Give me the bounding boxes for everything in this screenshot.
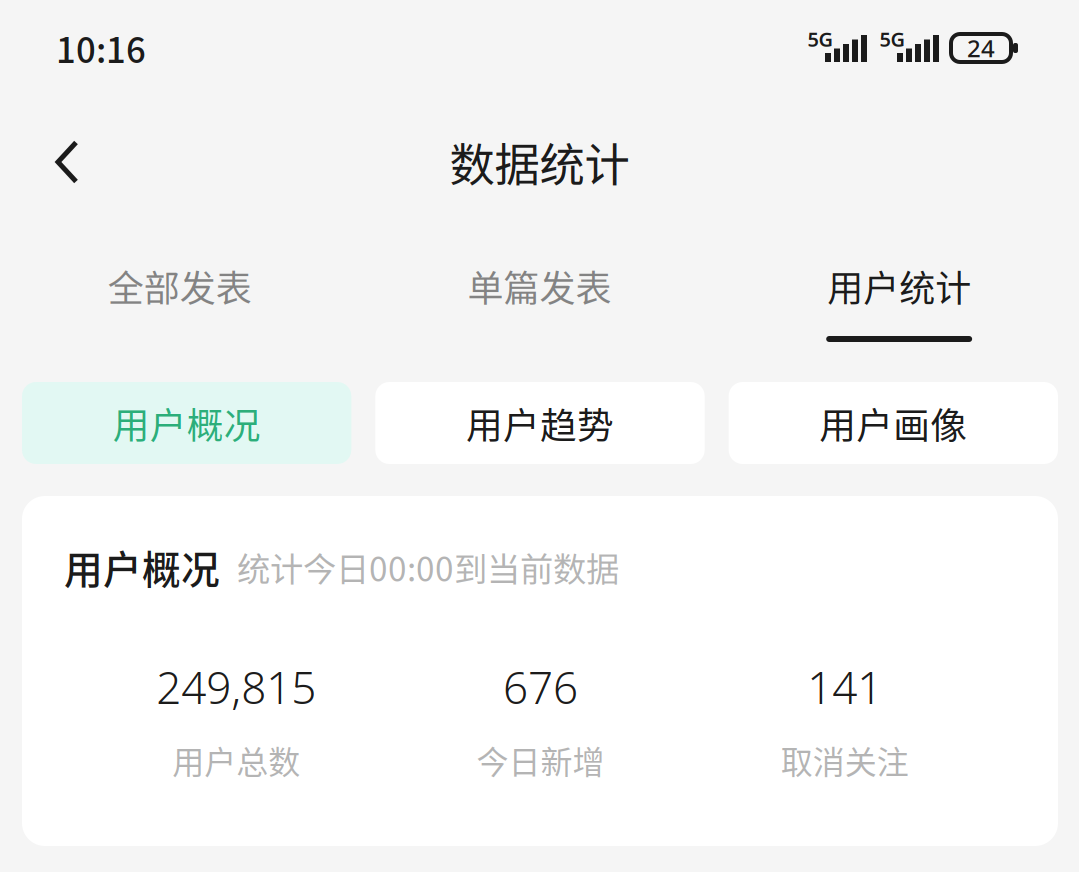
staticText: 249,815	[156, 658, 316, 716]
staticText: 24	[967, 32, 995, 64]
staticText: 用户概况	[64, 539, 220, 595]
staticText: 5G	[807, 26, 833, 52]
button[interactable]: 用户趋势	[375, 382, 705, 464]
button[interactable]: Back	[24, 119, 110, 205]
staticText: 统计今日00:00到当前数据	[237, 543, 619, 591]
staticText: 10:16	[56, 23, 146, 73]
staticText: 用户趋势	[466, 396, 614, 450]
staticText: 用户总数	[172, 737, 300, 783]
staticText: 141	[807, 658, 882, 716]
button[interactable]: 用户画像	[729, 382, 1058, 464]
button[interactable]: 用户统计	[719, 265, 1079, 342]
button[interactable]: 单篇发表	[360, 265, 719, 342]
staticText: 用户统计	[827, 260, 971, 312]
staticText: 5G	[879, 26, 905, 52]
button[interactable]: 用户概况	[22, 382, 351, 464]
button[interactable]: 全部发表	[0, 265, 360, 342]
staticText: 单篇发表	[467, 260, 611, 312]
staticText: 用户画像	[819, 396, 967, 450]
staticText: 676	[503, 658, 578, 716]
staticText: 数据统计	[449, 129, 629, 195]
staticText: 全部发表	[108, 260, 252, 312]
staticText: 用户概况	[113, 396, 261, 450]
staticText: 取消关注	[781, 737, 909, 783]
staticText: 今日新增	[476, 737, 604, 783]
